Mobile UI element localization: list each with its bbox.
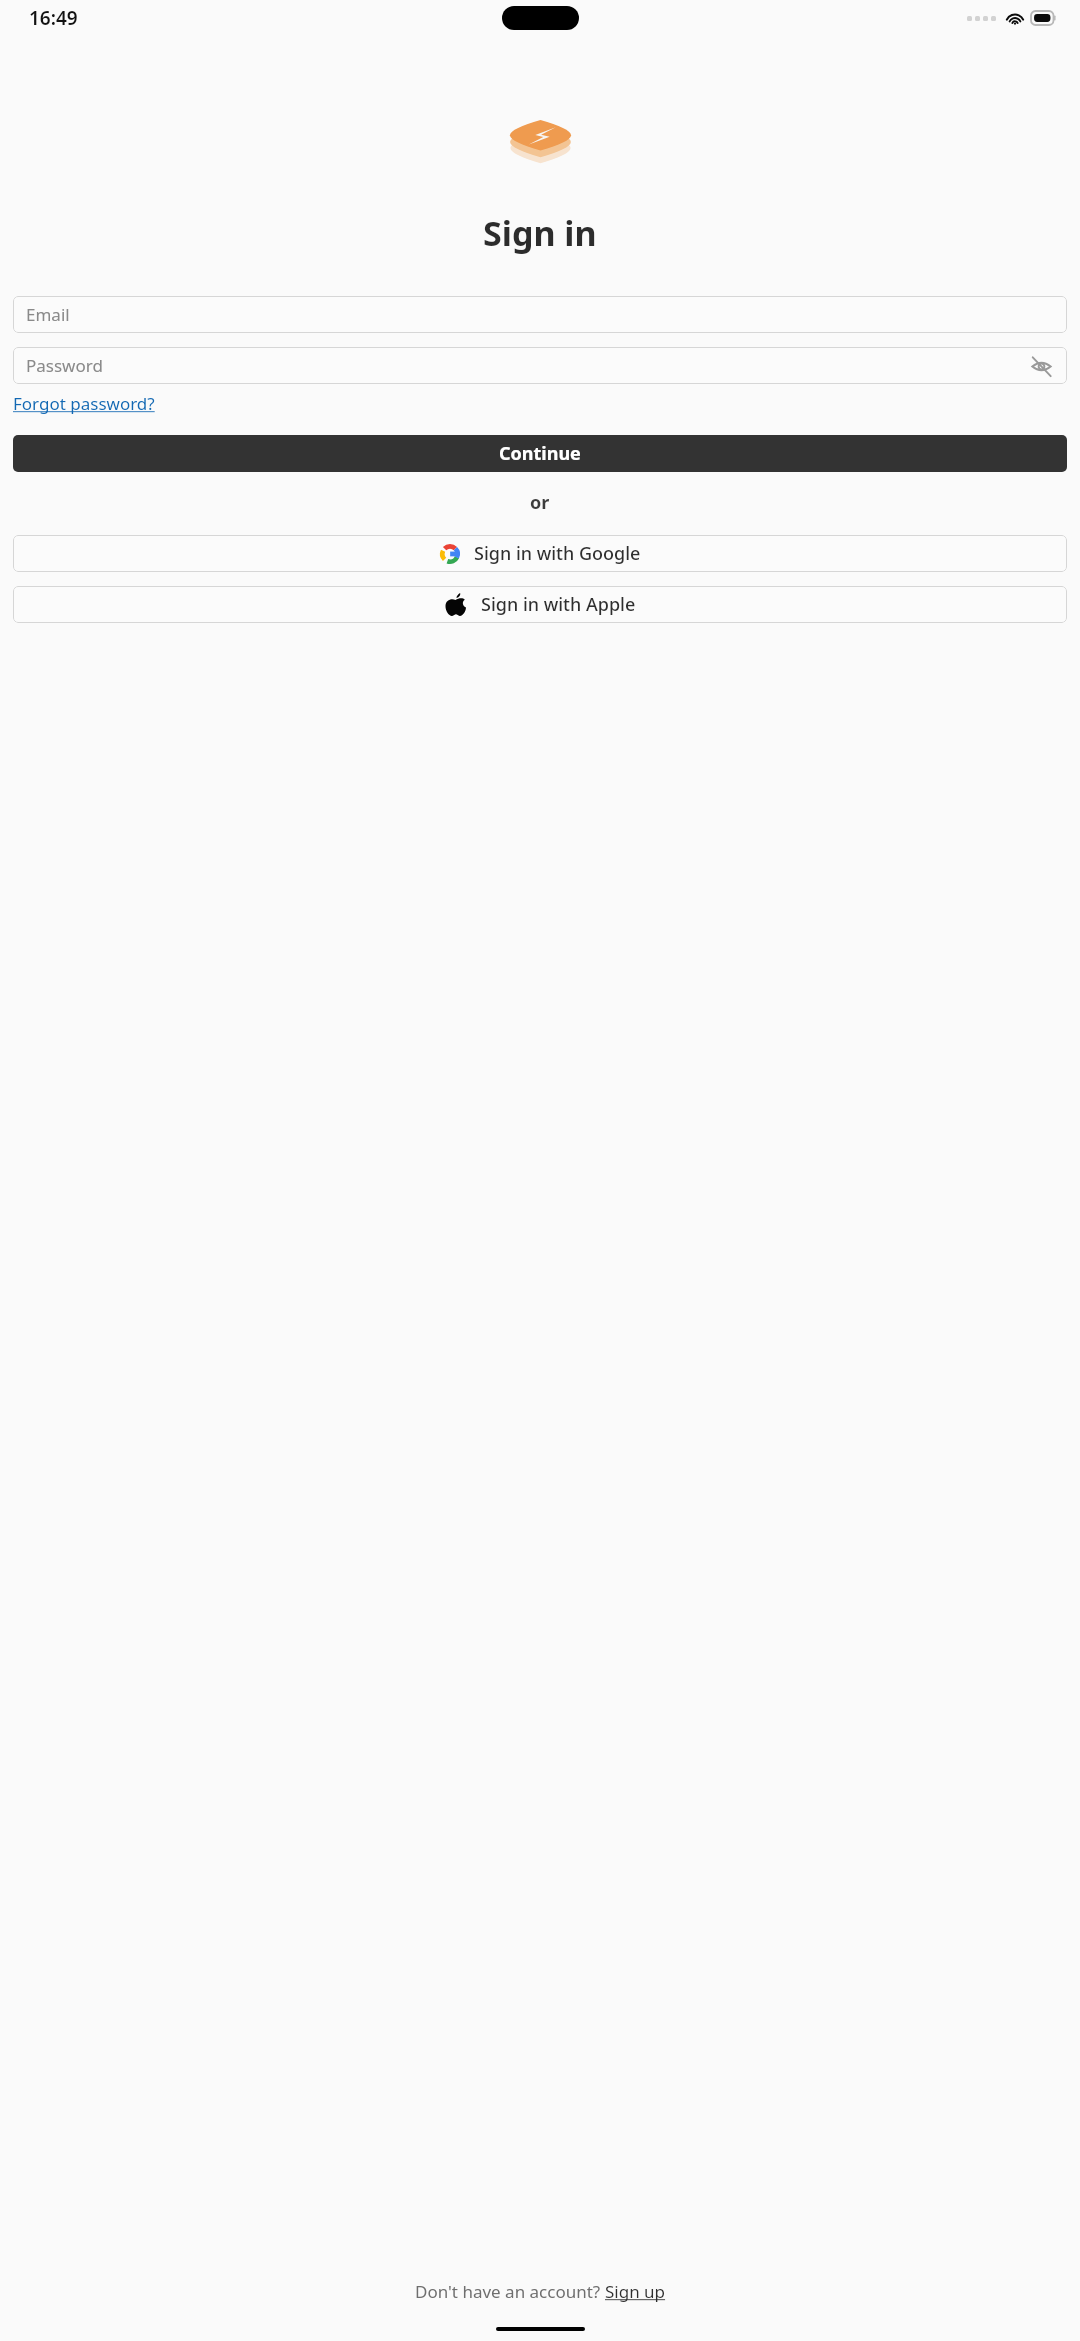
staticText: Sign in with Google <box>474 541 641 566</box>
button[interactable]: Sign in with Apple <box>13 586 1067 623</box>
button[interactable]: Show password <box>1028 353 1054 379</box>
staticText: or <box>530 490 550 515</box>
staticText: Sign up <box>605 2280 666 2303</box>
button[interactable]: Forgot password? <box>13 390 155 417</box>
staticText: Continue <box>499 441 581 466</box>
button[interactable]: Email <box>13 296 1067 333</box>
staticText: Sign in with Apple <box>481 592 636 617</box>
button[interactable]: Sign in with Google <box>13 535 1067 572</box>
button[interactable]: Password <box>13 347 1067 384</box>
staticText: Email <box>26 303 70 326</box>
staticText: 16:49 <box>29 5 78 31</box>
staticText: Don't have an account? <box>415 2280 605 2303</box>
button[interactable]: Sign up <box>605 2280 666 2303</box>
staticText: Sign in <box>483 210 597 256</box>
staticText: Forgot password? <box>13 392 155 415</box>
button[interactable]: Continue <box>13 435 1067 472</box>
staticText: Password <box>26 354 103 377</box>
